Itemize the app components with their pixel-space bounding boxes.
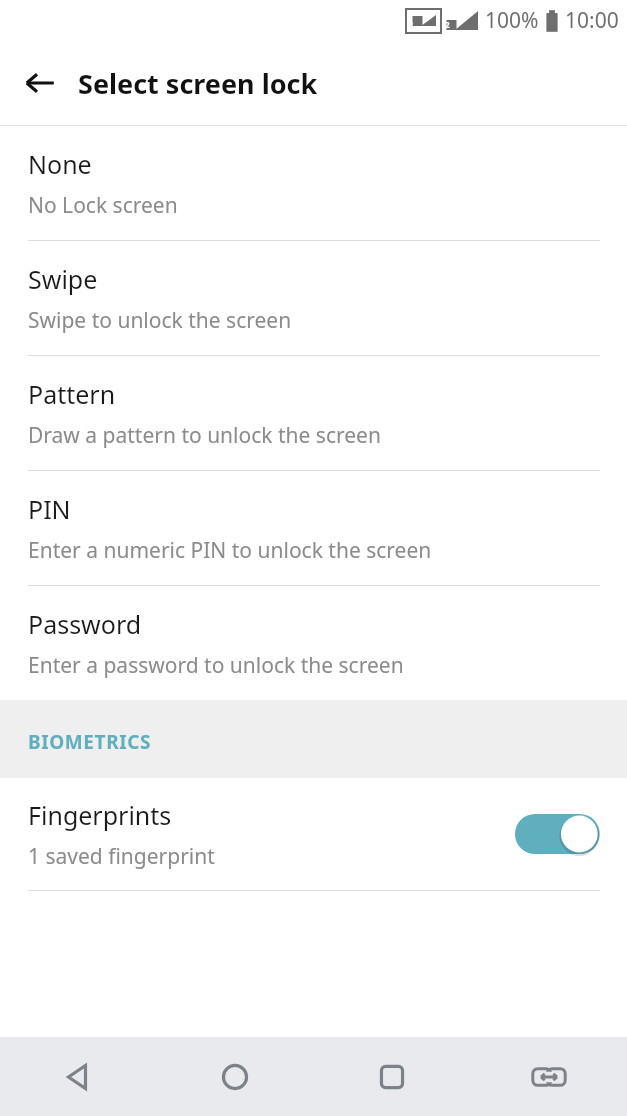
staticText: 1 saved fingerprint (28, 842, 215, 871)
button[interactable]: Fingerprints toggle (515, 812, 601, 856)
staticText: 100% (485, 6, 539, 35)
button[interactable]: PIN (0, 471, 627, 585)
staticText: PIN (28, 492, 71, 526)
button[interactable]: Recent apps (313, 1037, 470, 1116)
button[interactable]: Back (0, 1037, 156, 1116)
staticText: Enter a numeric PIN to unlock the screen (28, 536, 432, 565)
button[interactable]: Pattern (0, 356, 627, 470)
staticText: Fingerprints (28, 798, 172, 832)
button[interactable]: Home (156, 1037, 313, 1116)
staticText: 1 (409, 19, 414, 30)
staticText: Select screen lock (78, 65, 318, 102)
staticText: Draw a pattern to unlock the screen (28, 421, 381, 450)
button[interactable]: None (0, 126, 627, 240)
staticText: 2 (445, 19, 450, 30)
staticText: 10:00 (565, 6, 619, 35)
button: BIOMETRICS (0, 700, 627, 778)
staticText: No Lock screen (28, 191, 178, 220)
staticText: Password (28, 607, 142, 641)
staticText: Pattern (28, 377, 116, 411)
button[interactable]: Dual window (470, 1037, 627, 1116)
staticText: Swipe to unlock the screen (28, 306, 292, 335)
staticText: Swipe (28, 262, 98, 296)
staticText: None (28, 147, 92, 181)
button[interactable]: Password (0, 586, 627, 700)
staticText: Enter a password to unlock the screen (28, 651, 404, 680)
button[interactable]: Fingerprints (0, 778, 627, 890)
staticText: BIOMETRICS (28, 729, 152, 755)
button[interactable]: Back (14, 57, 66, 109)
button[interactable]: Swipe (0, 241, 627, 355)
